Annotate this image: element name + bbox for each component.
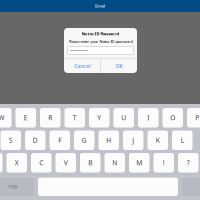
staticText: R (48, 113, 52, 122)
staticText: ••••••••• (70, 48, 88, 53)
button[interactable]: Y (89, 108, 109, 127)
staticText: L (181, 136, 184, 145)
button[interactable]: K (147, 130, 168, 150)
staticText: Y (97, 113, 101, 122)
button[interactable]: U (113, 108, 134, 127)
button[interactable]: Z (0, 153, 2, 172)
staticText: D (33, 136, 38, 145)
button[interactable]: ? (178, 153, 198, 172)
staticText: .?123 (7, 184, 16, 189)
button[interactable]: N (104, 153, 125, 172)
staticText: Please enter your Notes ID password (68, 39, 132, 44)
staticText: X (15, 158, 19, 167)
button[interactable]: T (64, 108, 85, 127)
staticText: V (64, 158, 68, 167)
button[interactable]: J (123, 130, 143, 150)
staticText: Notes ID Password (81, 31, 119, 36)
button[interactable]: G (74, 130, 94, 150)
staticText: OK (115, 62, 122, 70)
staticText: B (88, 158, 92, 167)
button[interactable]: W (0, 108, 11, 127)
button[interactable]: C (31, 153, 51, 172)
staticText: S (9, 136, 13, 145)
staticText: I (147, 113, 149, 122)
button[interactable]: S (0, 130, 21, 150)
button[interactable]: I (138, 108, 158, 127)
button[interactable]: .?123 (0, 177, 34, 196)
staticText: H (106, 136, 111, 145)
staticText: Email (95, 3, 105, 9)
staticText: C (39, 158, 43, 167)
staticText: J (132, 136, 134, 145)
staticText: M (136, 158, 142, 167)
button[interactable]: ! (153, 153, 174, 172)
button[interactable]: B (80, 153, 100, 172)
staticText: E (24, 113, 28, 122)
staticText: P (195, 113, 199, 122)
button[interactable]: X (6, 153, 27, 172)
staticText: F (58, 136, 61, 145)
button[interactable]: O (162, 108, 183, 127)
staticText: O (170, 113, 175, 122)
staticText: ? (187, 158, 190, 167)
button[interactable]: F (49, 130, 70, 150)
button[interactable]: E (15, 108, 36, 127)
staticText: T (73, 113, 77, 122)
button[interactable]: OK (101, 59, 137, 73)
staticText: G (82, 136, 87, 145)
staticText: N (112, 158, 117, 167)
button[interactable]: P (187, 108, 200, 127)
button[interactable]: L (172, 130, 192, 150)
button[interactable]: M (129, 153, 149, 172)
staticText: ! (163, 158, 165, 167)
button[interactable]: R (40, 108, 60, 127)
staticText: K (156, 136, 160, 145)
button[interactable]: H (98, 130, 119, 150)
button[interactable]: Cancel (64, 59, 100, 73)
button[interactable]: V (55, 153, 76, 172)
staticText: U (121, 113, 126, 122)
staticText: Cancel (74, 62, 90, 70)
button[interactable]: D (25, 130, 45, 150)
staticText: W (0, 113, 4, 122)
